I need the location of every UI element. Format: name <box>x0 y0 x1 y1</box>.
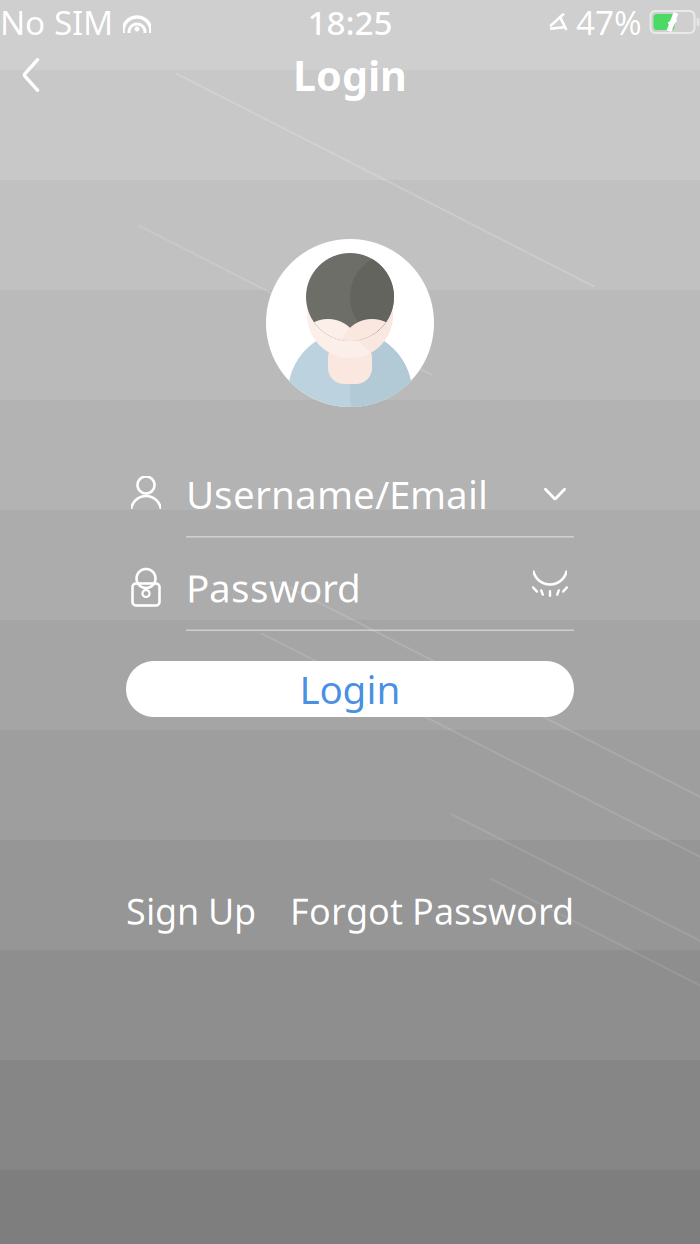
button[interactable]: Sign Up <box>126 879 256 943</box>
staticText: Password <box>186 562 361 613</box>
button[interactable]: Forgot Password <box>290 879 574 943</box>
staticText: No SIM <box>0 0 113 44</box>
button[interactable]: Show password <box>526 565 574 609</box>
staticText: Login <box>293 48 407 102</box>
staticText: Login <box>299 663 400 715</box>
button[interactable]: Show suggestions <box>536 474 574 514</box>
staticText: 47% <box>576 0 642 44</box>
staticText: Username/Email <box>186 468 488 520</box>
button[interactable]: Back <box>0 44 62 106</box>
button[interactable]: Login <box>126 661 574 717</box>
staticText: Sign Up <box>126 887 256 935</box>
staticText: 18:25 <box>307 0 392 44</box>
staticText: Forgot Password <box>290 887 574 935</box>
